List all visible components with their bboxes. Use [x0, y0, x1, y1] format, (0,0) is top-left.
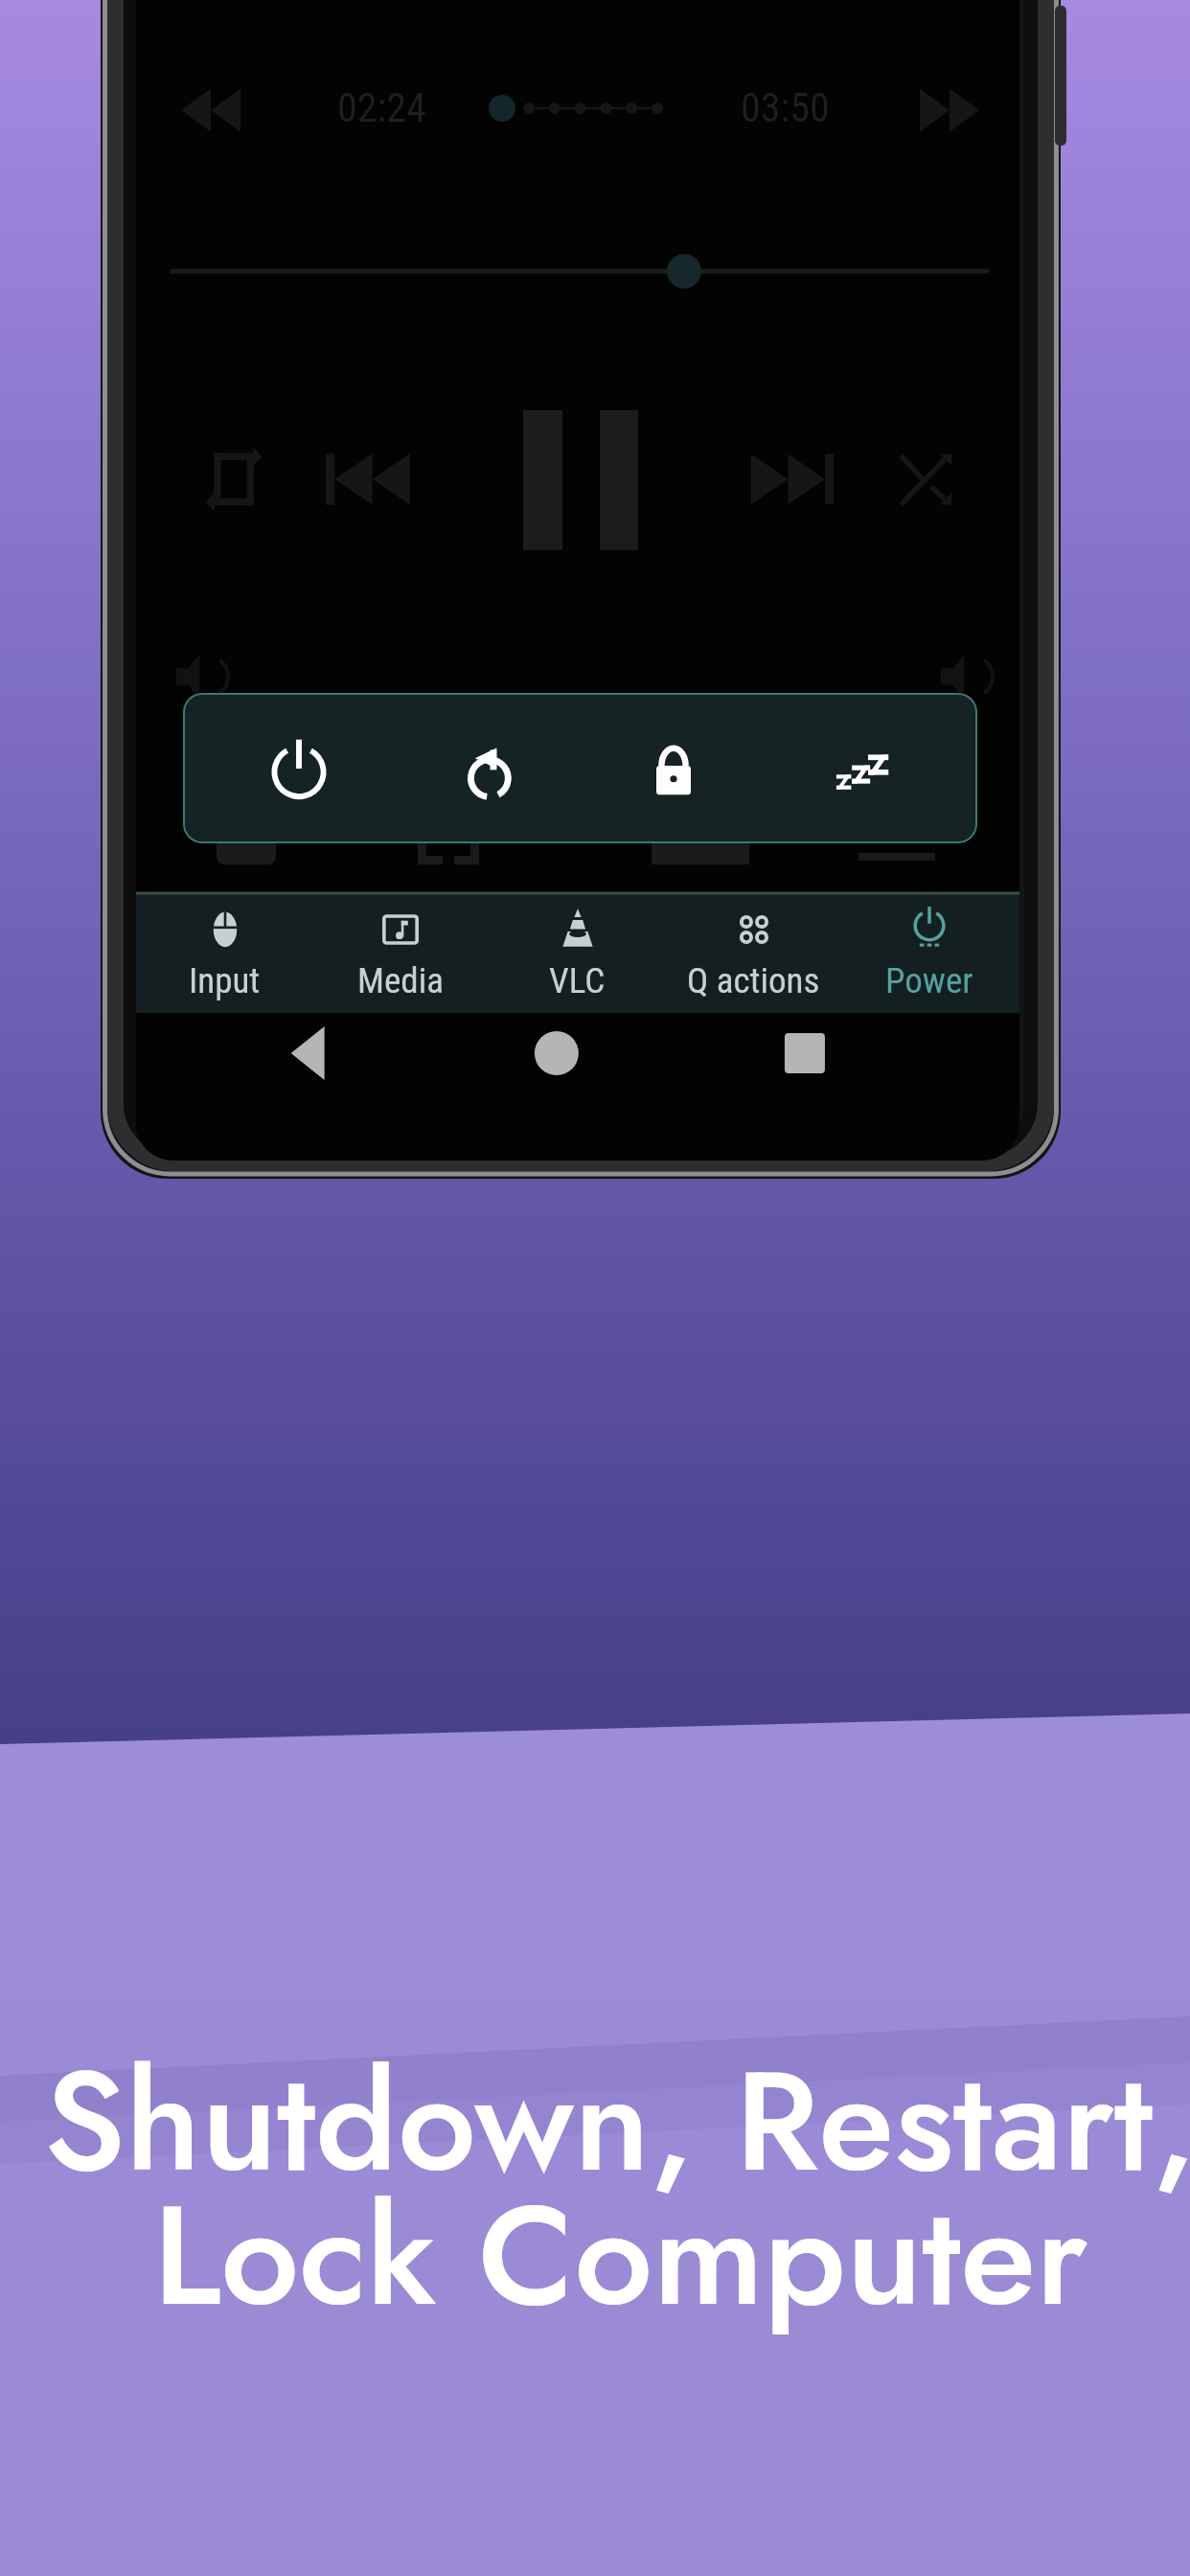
staticText: Media	[357, 960, 444, 1001]
button[interactable]: Lock	[602, 697, 745, 840]
button[interactable]: Q actions	[665, 892, 841, 1013]
button[interactable]: VLC	[489, 892, 665, 1013]
staticText: 03:50	[741, 84, 830, 131]
button[interactable]: Shut down	[227, 697, 371, 840]
button[interactable]: Restart	[415, 697, 559, 840]
staticText: 02:24	[337, 84, 426, 131]
staticText: VLC	[549, 960, 606, 1001]
button[interactable]: Power	[841, 892, 1018, 1013]
staticText: Power	[885, 960, 973, 1001]
staticText: Shutdown, Restart, Lock Computer	[44, 2021, 1190, 2356]
button[interactable]: Media	[312, 892, 489, 1013]
staticText: Input	[189, 960, 261, 1001]
staticText: Q actions	[687, 960, 820, 1001]
button[interactable]: Input	[136, 892, 312, 1013]
button[interactable]: Sleep	[790, 697, 933, 840]
